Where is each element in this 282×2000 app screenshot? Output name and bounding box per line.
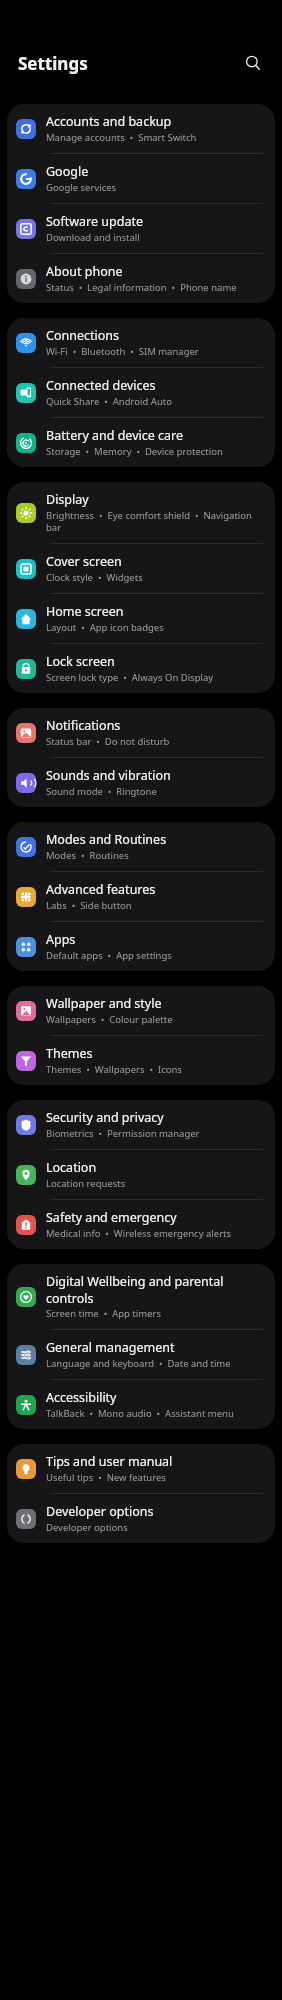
button[interactable]: Tips and user manual: [7, 1444, 275, 1493]
staticText: Software update: [46, 213, 143, 230]
button[interactable]: Battery and device care: [7, 418, 275, 467]
staticText: Security and privacy: [46, 1109, 164, 1126]
staticText: Storage • Memory • Device protection: [46, 445, 223, 458]
staticText: Apps: [46, 931, 76, 948]
staticText: Biometrics • Permission manager: [46, 1127, 200, 1140]
staticText: Sounds and vibration: [46, 767, 171, 784]
staticText: Display: [46, 491, 89, 508]
staticText: Wallpapers • Colour palette: [46, 1013, 173, 1026]
staticText: Connections: [46, 327, 119, 344]
staticText: TalkBack • Mono audio • Assistant menu: [46, 1407, 234, 1420]
staticText: Developer options: [46, 1521, 128, 1534]
staticText: Location: [46, 1159, 97, 1176]
staticText: Labs • Side button: [46, 899, 132, 912]
staticText: Developer options: [46, 1503, 154, 1520]
button[interactable]: Google: [7, 154, 275, 203]
staticText: Status bar • Do not disturb: [46, 735, 170, 748]
staticText: Cover screen: [46, 553, 122, 570]
staticText: Digital Wellbeing and parental controls: [46, 1273, 263, 1306]
staticText: Quick Share • Android Auto: [46, 395, 172, 408]
staticText: Sound mode • Ringtone: [46, 785, 157, 798]
button[interactable]: About phone: [7, 254, 275, 303]
staticText: Language and keyboard • Date and time: [46, 1357, 231, 1370]
button[interactable]: Home screen: [7, 594, 275, 643]
staticText: Default apps • App settings: [46, 949, 172, 962]
staticText: Themes • Wallpapers • Icons: [46, 1063, 182, 1076]
button[interactable]: Modes and Routines: [7, 822, 275, 871]
button[interactable]: Cover screen: [7, 544, 275, 593]
staticText: Manage accounts • Smart Switch: [46, 131, 197, 144]
button[interactable]: Notifications: [7, 708, 275, 757]
staticText: Connected devices: [46, 377, 156, 394]
staticText: Brightness • Eye comfort shield • Naviga…: [46, 509, 263, 534]
staticText: Download and install: [46, 231, 140, 244]
staticText: Google: [46, 163, 89, 180]
button[interactable]: Apps: [7, 922, 275, 971]
staticText: General management: [46, 1339, 175, 1356]
staticText: Screen time • App timers: [46, 1307, 161, 1320]
button[interactable]: Security and privacy: [7, 1100, 275, 1149]
staticText: Safety and emergency: [46, 1209, 177, 1226]
staticText: Google services: [46, 181, 117, 194]
button[interactable]: Search: [238, 48, 268, 78]
button[interactable]: Location: [7, 1150, 275, 1199]
button[interactable]: Sounds and vibration: [7, 758, 275, 807]
button[interactable]: Digital Wellbeing and parental controls: [7, 1264, 275, 1329]
staticText: Clock style • Widgets: [46, 571, 143, 584]
button[interactable]: Safety and emergency: [7, 1200, 275, 1249]
staticText: Modes • Routines: [46, 849, 129, 862]
button[interactable]: Developer options: [7, 1494, 275, 1543]
staticText: Settings: [18, 52, 88, 75]
staticText: Status • Legal information • Phone name: [46, 281, 237, 294]
staticText: Location requests: [46, 1177, 126, 1190]
staticText: Notifications: [46, 717, 121, 734]
staticText: Advanced features: [46, 881, 156, 898]
staticText: Battery and device care: [46, 427, 184, 444]
staticText: Layout • App icon badges: [46, 621, 164, 634]
staticText: Themes: [46, 1045, 93, 1062]
button[interactable]: Software update: [7, 204, 275, 253]
button[interactable]: Wallpaper and style: [7, 986, 275, 1035]
staticText: Accounts and backup: [46, 113, 172, 130]
staticText: Lock screen: [46, 653, 115, 670]
staticText: Accessibility: [46, 1389, 117, 1406]
staticText: Screen lock type • Always On Display: [46, 671, 214, 684]
button[interactable]: Lock screen: [7, 644, 275, 693]
staticText: Wallpaper and style: [46, 995, 162, 1012]
button[interactable]: General management: [7, 1330, 275, 1379]
staticText: Useful tips • New features: [46, 1471, 166, 1484]
staticText: Wi-Fi • Bluetooth • SIM manager: [46, 345, 199, 358]
button[interactable]: Connected devices: [7, 368, 275, 417]
staticText: Modes and Routines: [46, 831, 167, 848]
button[interactable]: Accessibility: [7, 1380, 275, 1429]
staticText: About phone: [46, 263, 123, 280]
button[interactable]: Themes: [7, 1036, 275, 1085]
button[interactable]: Connections: [7, 318, 275, 367]
staticText: Medical info • Wireless emergency alerts: [46, 1227, 232, 1240]
staticText: Home screen: [46, 603, 124, 620]
button[interactable]: Advanced features: [7, 872, 275, 921]
button[interactable]: Display: [7, 482, 275, 543]
staticText: Tips and user manual: [46, 1453, 173, 1470]
button[interactable]: Accounts and backup: [7, 104, 275, 153]
